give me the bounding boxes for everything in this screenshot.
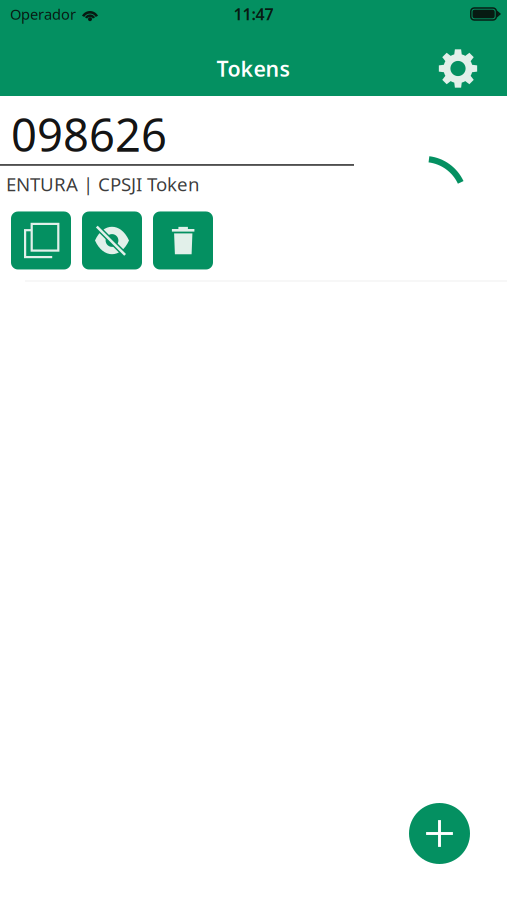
button[interactable]: Delete token: [153, 211, 213, 269]
staticText: ENTURA | CPSJI Token: [6, 172, 200, 196]
staticText: Operador: [10, 4, 76, 24]
staticText: 11:47: [233, 3, 273, 25]
staticText: 098626: [11, 104, 167, 164]
button[interactable]: Hide code: [82, 211, 142, 269]
button[interactable]: Add token: [409, 803, 470, 864]
button[interactable]: Copy code: [11, 211, 71, 269]
staticText: Tokens: [216, 54, 290, 83]
button[interactable]: Settings: [429, 39, 487, 97]
